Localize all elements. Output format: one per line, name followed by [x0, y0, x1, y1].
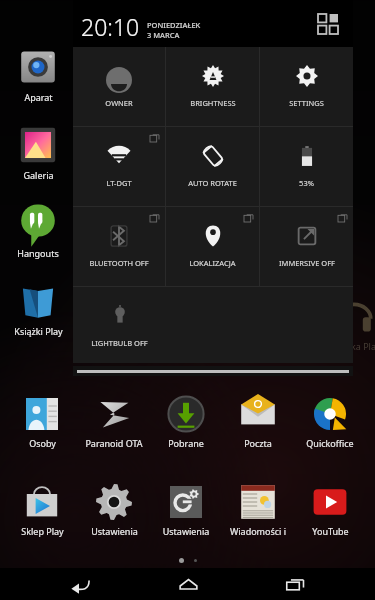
button[interactable]: Aparat	[8, 46, 68, 114]
button[interactable]: Galeria	[8, 124, 68, 192]
button[interactable]: Poczta	[224, 394, 292, 466]
staticText: LOKALIZACJA	[189, 258, 236, 268]
staticText: 3 MARCA	[147, 30, 180, 40]
staticText: Pobrane	[168, 437, 204, 449]
button[interactable]: Recent apps	[268, 568, 322, 600]
button[interactable]: SETTINGS	[260, 47, 353, 126]
staticText: Książki Play	[14, 325, 63, 337]
button[interactable]: Ustawienia	[80, 482, 148, 554]
staticText: Sklep Play	[21, 525, 64, 537]
button[interactable]: Hangouts	[8, 202, 68, 270]
staticText: IMMERSIVE OFF	[279, 258, 335, 268]
staticText: SETTINGS	[289, 98, 324, 108]
button[interactable]: BLUETOOTH OFF	[73, 207, 165, 286]
staticText: Muzyka Play	[328, 340, 375, 352]
staticText: Wiadomości i pog.	[224, 525, 292, 537]
button[interactable]: Quickoffice	[296, 394, 364, 466]
staticText: Hangouts	[17, 247, 59, 259]
button[interactable]: OWNER	[73, 47, 165, 126]
button[interactable]: LOKALIZACJA	[166, 207, 259, 286]
button[interactable]: Ustawienia Google	[152, 482, 220, 554]
staticText: 53%	[299, 178, 314, 188]
staticText: BLUETOOTH OFF	[89, 258, 149, 268]
button[interactable]: LIGHTBULB OFF	[73, 287, 166, 363]
button[interactable]: Pobrane	[152, 394, 220, 466]
staticText: Ustawienia	[91, 525, 138, 537]
staticText: Quickoffice	[306, 437, 354, 449]
staticText: Aparat	[24, 91, 53, 103]
button[interactable]: 53%	[260, 127, 353, 206]
button[interactable]: Sklep Play	[8, 482, 76, 554]
staticText: YouTube	[312, 525, 349, 537]
button[interactable]: Książki Play	[8, 280, 68, 348]
staticText: OWNER	[105, 98, 133, 108]
button[interactable]: Wiadomości i pog.	[224, 482, 292, 554]
staticText: LT-DGT	[106, 178, 132, 188]
staticText: LIGHTBULB OFF	[91, 338, 148, 348]
button[interactable]: Paranoid OTA	[80, 394, 148, 466]
button[interactable]: IMMERSIVE OFF	[260, 207, 353, 286]
button[interactable]: YouTube	[296, 482, 364, 554]
button[interactable]: BRIGHTNESS	[166, 47, 259, 126]
staticText: Poczta	[244, 437, 272, 449]
staticText: PONIEDZIAŁEK	[147, 20, 201, 30]
button[interactable]: Home	[161, 568, 215, 600]
button[interactable]: Quick settings	[314, 10, 342, 38]
button[interactable]: LT-DGT	[73, 127, 165, 206]
staticText: Ustawienia Google	[152, 525, 220, 537]
staticText: 20:10	[81, 11, 140, 42]
button[interactable]: Osoby	[8, 394, 76, 466]
staticText: Osoby	[29, 437, 56, 449]
staticText: Galeria	[23, 169, 54, 181]
button[interactable]: Back	[53, 568, 107, 600]
staticText: BRIGHTNESS	[190, 98, 236, 108]
button[interactable]: AUTO ROTATE	[166, 127, 259, 206]
staticText: Paranoid OTA	[85, 437, 143, 449]
staticText: AUTO ROTATE	[188, 178, 237, 188]
